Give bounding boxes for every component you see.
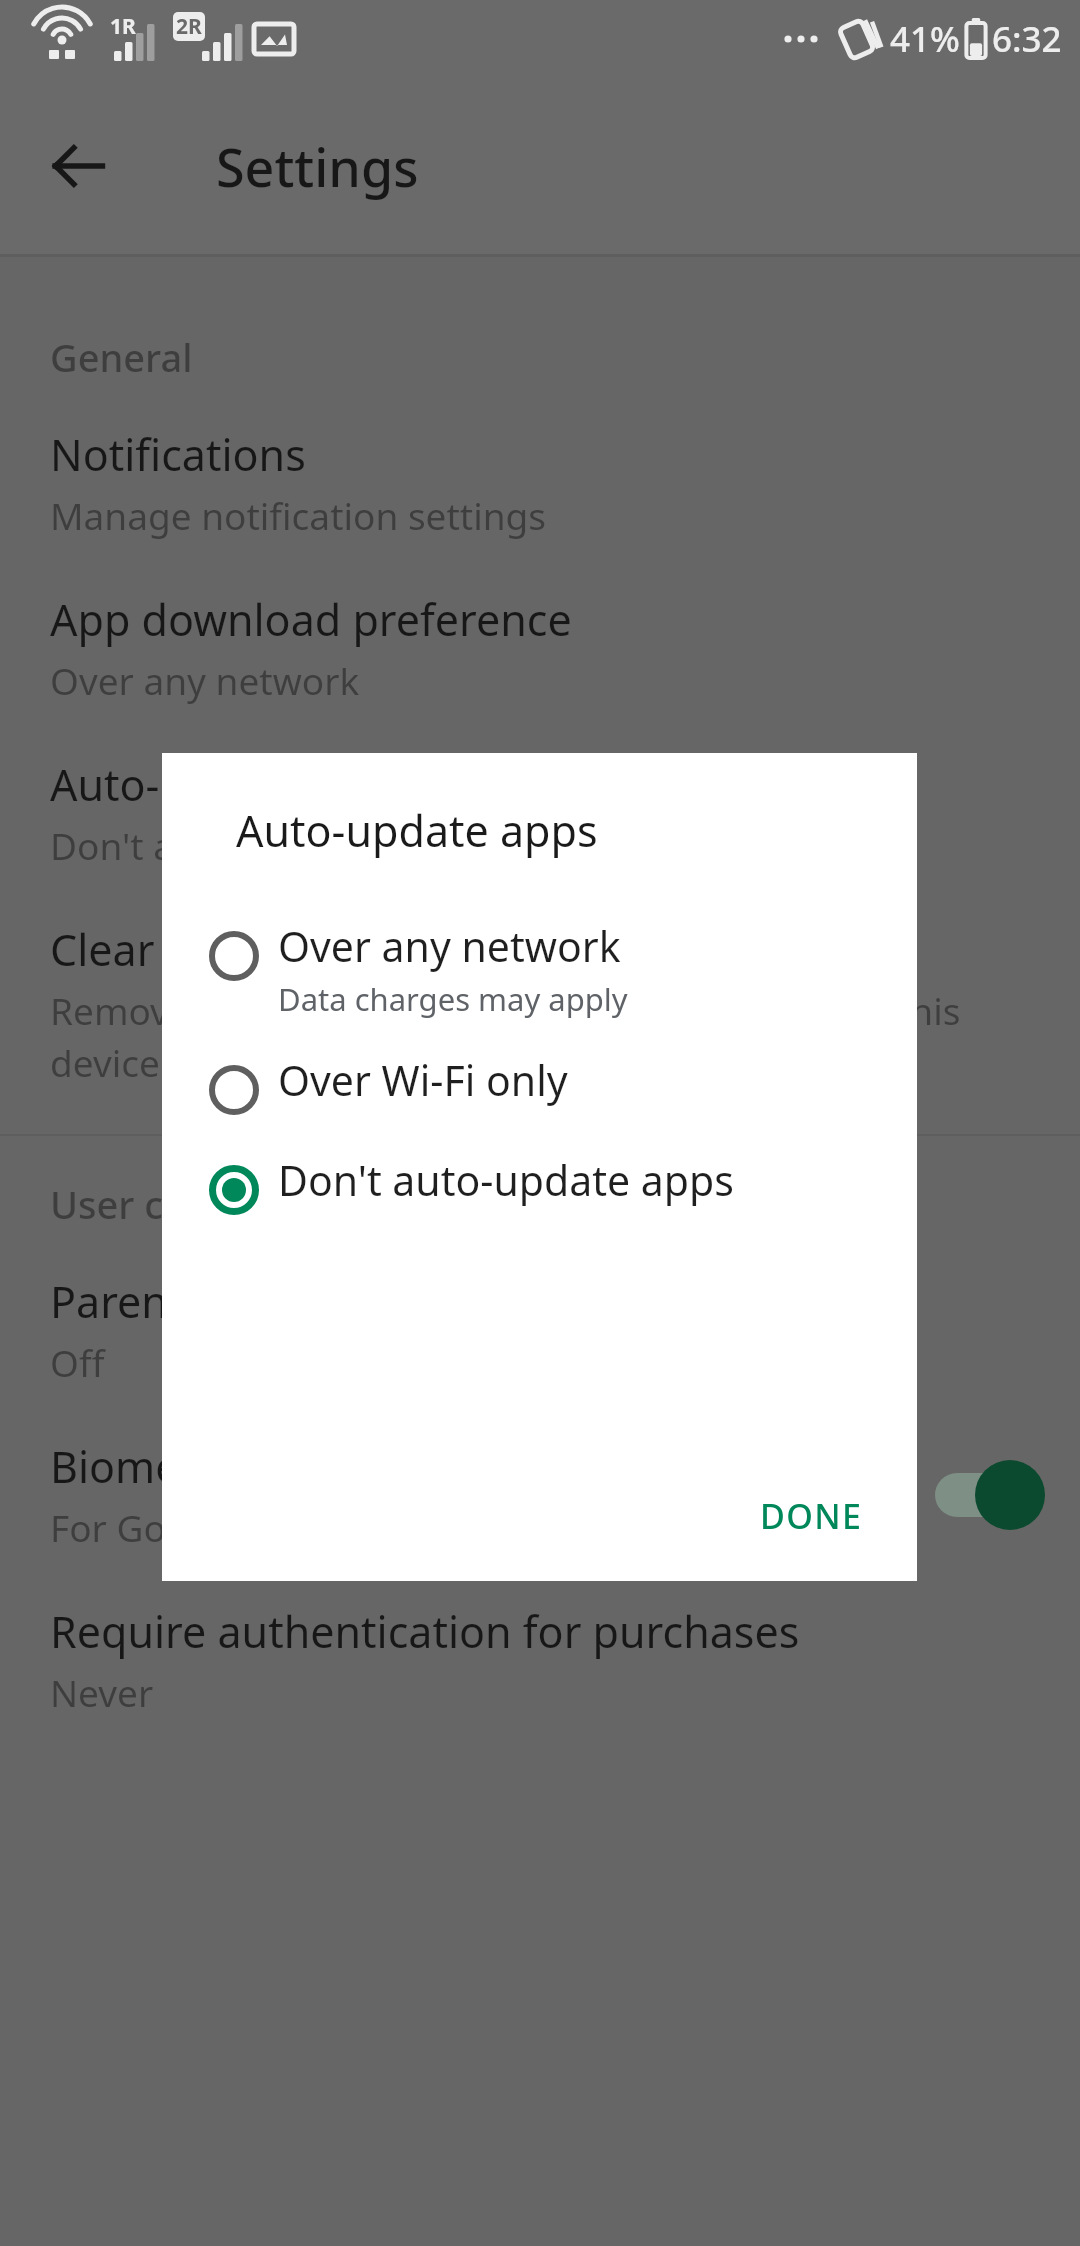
button[interactable]: Notifications	[0, 399, 1080, 564]
staticText: Auto-update apps	[236, 801, 598, 860]
button[interactable]: Clear local search history	[0, 894, 1080, 1112]
staticText: Manage notification settings	[50, 490, 547, 540]
button[interactable]: Over Wi-Fi only	[162, 1052, 917, 1128]
button[interactable]: Parental controls	[0, 1246, 1080, 1411]
button[interactable]: Don't auto-update apps	[162, 1152, 917, 1228]
staticText: DONE	[760, 1493, 863, 1539]
staticText: Data charges may apply	[278, 978, 628, 1020]
staticText: Over any network	[278, 918, 621, 974]
button[interactable]: Over any network	[162, 918, 917, 1032]
staticText: Over Wi-Fi only	[278, 1052, 568, 1108]
button[interactable]: Back	[30, 118, 126, 214]
staticText: Auto-update apps	[50, 755, 412, 814]
staticText: Over any network	[50, 655, 360, 705]
button[interactable]: Auto-update apps	[0, 729, 1080, 894]
staticText: Never	[50, 1667, 154, 1717]
staticText: 1R	[110, 12, 136, 41]
staticText: App download preference	[50, 590, 572, 649]
staticText: Parental controls	[50, 1272, 394, 1331]
staticText: Remove all the searches you have perform…	[50, 985, 961, 1088]
staticText: Settings	[216, 131, 419, 202]
button[interactable]: App download preference	[0, 564, 1080, 729]
button[interactable]: Require authentication for purchases	[0, 1576, 1080, 1741]
button[interactable]: DONE	[738, 1475, 885, 1557]
staticText: Biometric authentication	[50, 1437, 550, 1496]
staticText: Notifications	[50, 425, 306, 484]
button[interactable]: Toggle biometric authentication	[930, 1453, 1050, 1537]
staticText: Require authentication for purchases	[50, 1602, 800, 1661]
staticText: 6:32	[992, 15, 1062, 63]
staticText: 41%	[890, 15, 960, 63]
staticText: Don't auto-update apps	[278, 1152, 734, 1208]
staticText: 2R	[176, 12, 202, 41]
staticText: Clear local search history	[50, 920, 554, 979]
staticText: For Google Play purchases on this device	[50, 1502, 758, 1552]
staticText: User controls	[50, 1178, 292, 1230]
staticText: Don't auto-update apps	[50, 820, 462, 870]
staticText: Off	[50, 1337, 105, 1387]
button[interactable]: Biometric authentication	[0, 1411, 1080, 1576]
staticText: General	[50, 331, 193, 383]
